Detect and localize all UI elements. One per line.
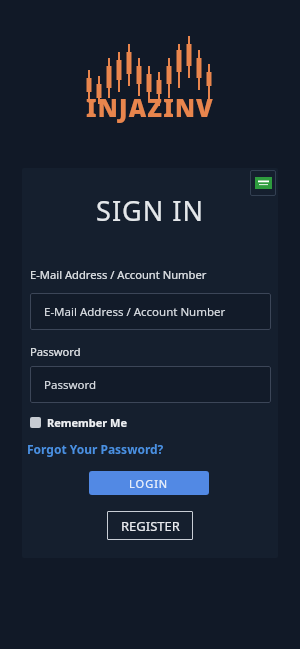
staticText: Password bbox=[30, 344, 81, 359]
staticText: E-Mail Address / Account Number bbox=[30, 267, 207, 282]
staticText: E-Mail Address / Account Number bbox=[44, 304, 226, 320]
button[interactable]: Password bbox=[30, 366, 271, 403]
button[interactable]: REGISTER bbox=[107, 511, 193, 540]
staticText: SIGN IN bbox=[0, 192, 300, 229]
button[interactable] bbox=[250, 170, 276, 196]
staticText: INJAZINV bbox=[0, 91, 300, 124]
staticText: Password bbox=[44, 377, 97, 393]
button[interactable]: Forgot Your Password? bbox=[27, 441, 164, 457]
button[interactable]: LOGIN bbox=[89, 471, 209, 495]
button[interactable]: E-Mail Address / Account Number bbox=[30, 293, 271, 330]
staticText: Remember Me bbox=[47, 415, 128, 430]
button[interactable]: Remember Me bbox=[30, 415, 128, 430]
staticText: REGISTER bbox=[121, 517, 180, 535]
staticText: LOGIN bbox=[129, 476, 169, 491]
